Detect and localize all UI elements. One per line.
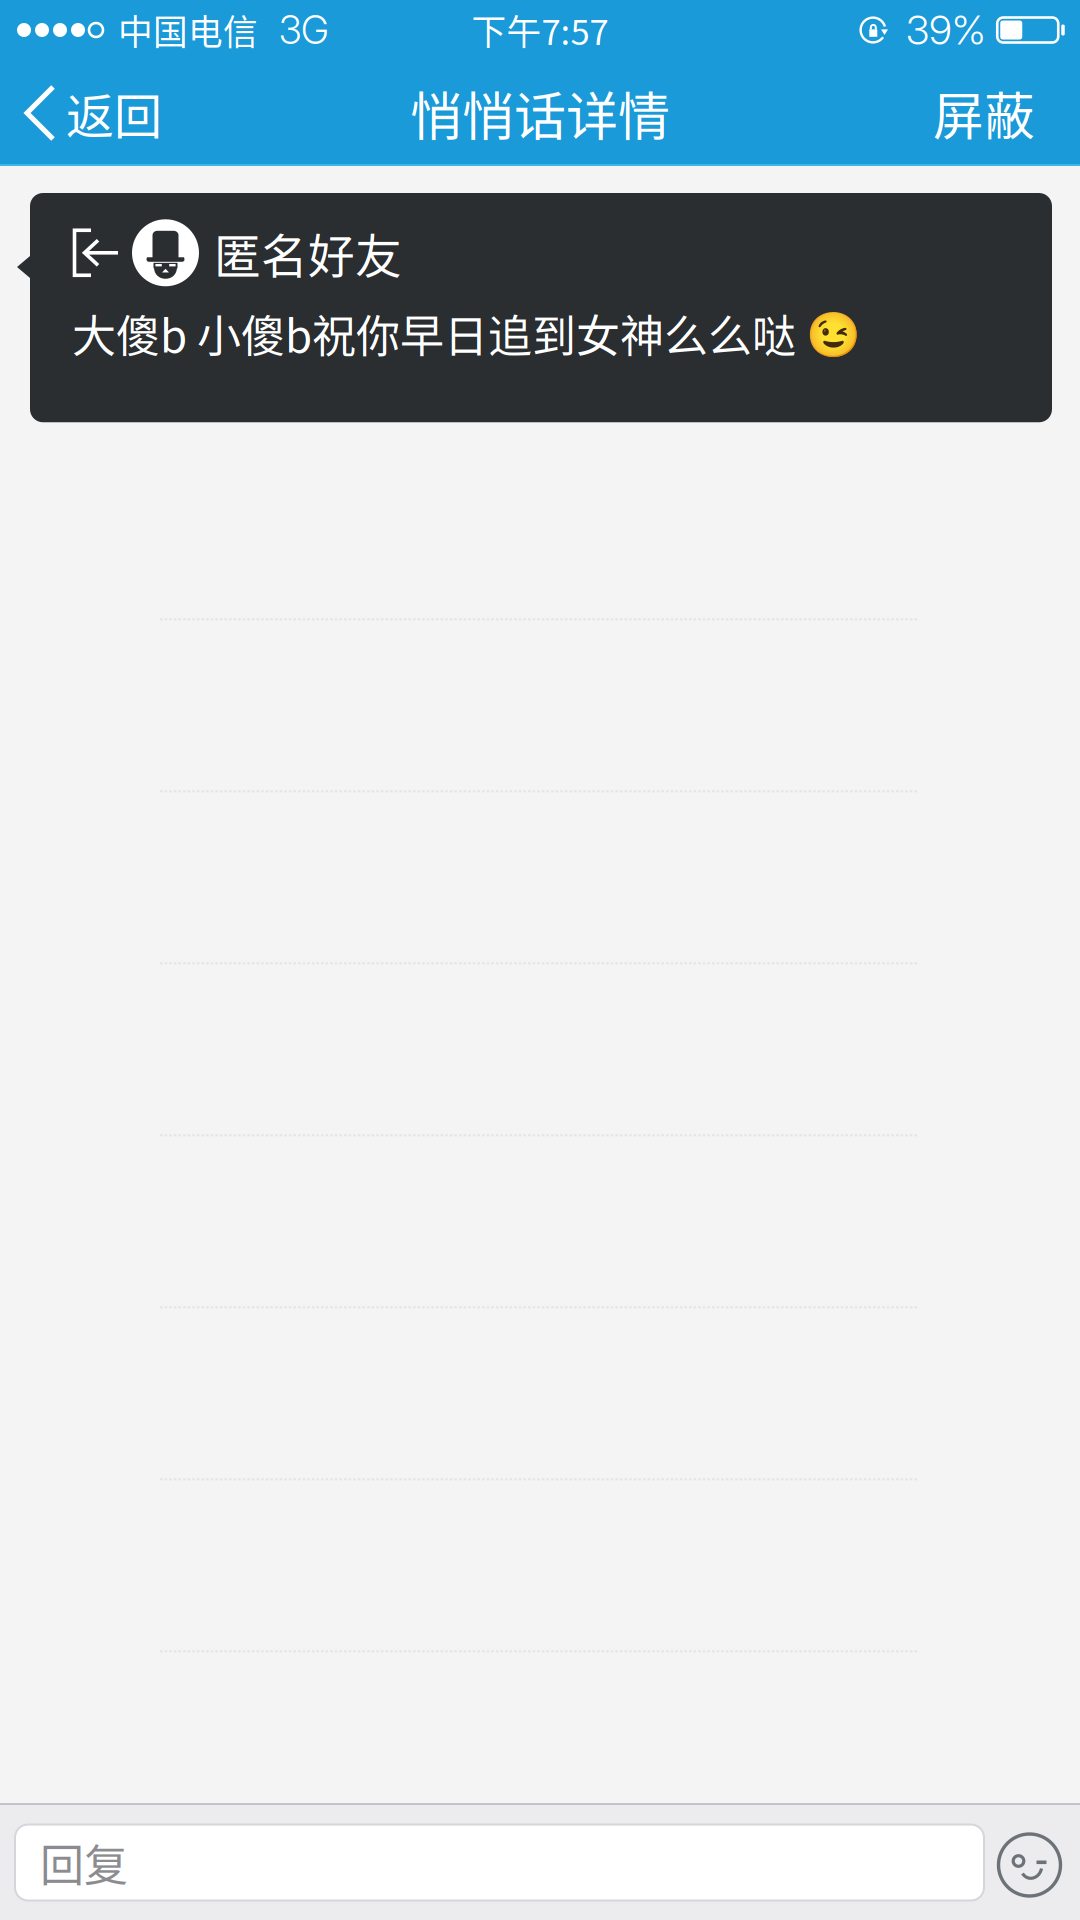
button[interactable]: 屏蔽: [903, 60, 1080, 166]
staticText: 39%: [906, 6, 986, 54]
staticText: 返回: [66, 78, 162, 148]
button[interactable]: 回复: [15, 1824, 984, 1900]
staticText: 悄悄话详情: [410, 75, 670, 151]
staticText: 3G: [279, 7, 329, 53]
staticText: 回复: [40, 1831, 128, 1894]
staticText: 匿名好友: [214, 219, 402, 287]
staticText: 大傻b 小傻b祝你早日追到女神么么哒 😉: [72, 302, 861, 365]
staticText: 中国电信: [118, 5, 258, 55]
staticText: 屏蔽: [933, 76, 1035, 150]
button[interactable]: Emoji: [998, 1828, 1061, 1896]
button[interactable]: 返回: [0, 60, 186, 166]
staticText: 下午7:57: [471, 5, 608, 55]
